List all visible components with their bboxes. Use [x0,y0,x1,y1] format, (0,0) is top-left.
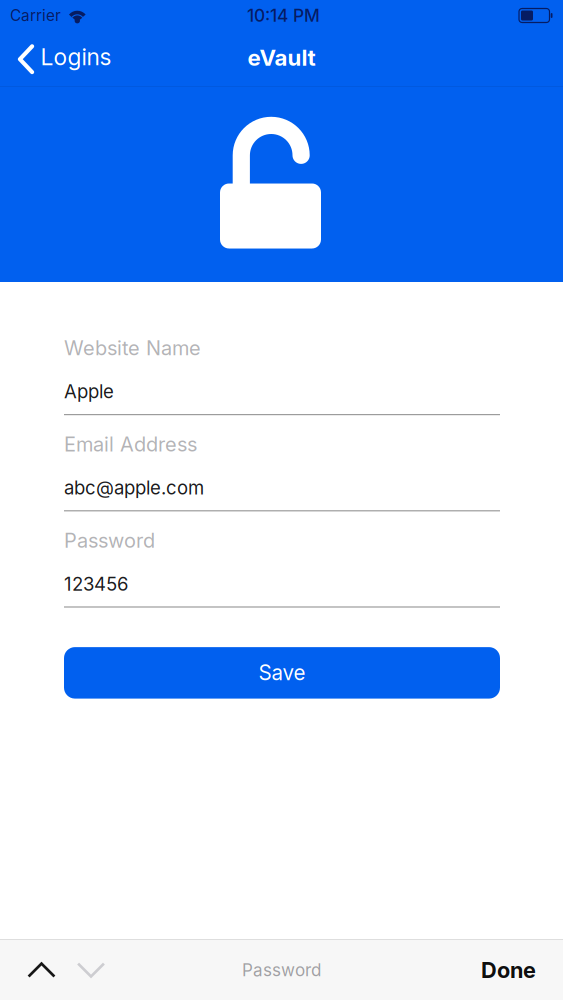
staticText: Done [481,957,536,983]
staticText: eVault [247,44,315,71]
staticText: Apple [64,380,114,403]
button[interactable]: Password [64,530,500,608]
button[interactable]: Previous field [0,940,76,1000]
staticText: abc@apple.com [64,476,204,499]
staticText: 123456 [64,573,128,595]
staticText: Carrier [10,6,61,25]
button[interactable]: Save [64,647,500,699]
staticText: Save [258,660,305,685]
button[interactable]: Next field [76,940,127,1000]
button[interactable]: Done [457,940,563,1000]
staticText: Password [242,960,321,980]
staticText: 10:14 PM [247,5,320,26]
staticText: Logins [40,43,111,71]
staticText: Email Address [64,432,197,456]
button[interactable]: Logins [0,31,121,87]
staticText: Password [64,528,155,552]
button[interactable]: Website Name [64,338,500,415]
button[interactable]: Email Address [64,434,500,511]
staticText: Website Name [64,336,201,360]
